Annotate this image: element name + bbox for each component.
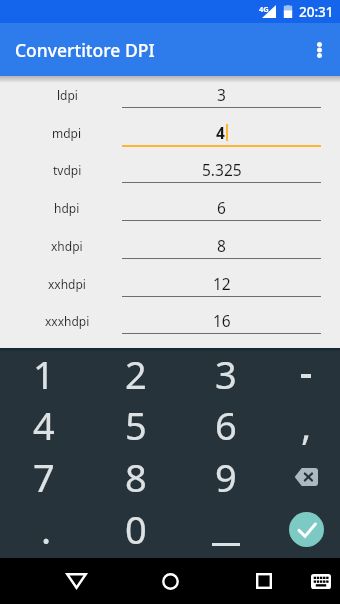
button[interactable]: 6: [122, 197, 321, 217]
button[interactable]: 8: [122, 235, 321, 255]
staticText: 4: [33, 399, 55, 451]
button[interactable]: 8: [91, 451, 181, 503]
staticText: ldpi: [57, 87, 78, 103]
staticText: 4G: [259, 4, 269, 14]
button[interactable]: Minus: [272, 348, 340, 400]
staticText: 1: [33, 348, 55, 400]
staticText: 3: [217, 84, 226, 104]
staticText: 5.325: [202, 159, 242, 179]
other: Backspace: [294, 468, 318, 486]
staticText: 20:31: [299, 3, 334, 21]
staticText: 6: [215, 399, 237, 451]
staticText: 12: [213, 273, 231, 293]
button[interactable]: More options: [297, 23, 340, 76]
staticText: xxhdpi: [48, 276, 86, 292]
staticText: 7: [33, 451, 55, 503]
button[interactable]: 6: [184, 399, 268, 451]
staticText: 5: [125, 399, 147, 451]
staticText: 8: [125, 451, 147, 503]
button[interactable]: Switch keyboard: [297, 558, 340, 604]
staticText: 2: [125, 348, 147, 400]
button[interactable]: Recent apps: [228, 558, 300, 604]
button[interactable]: 0: [91, 503, 181, 555]
staticText: 16: [213, 310, 231, 330]
button[interactable]: xxhdpi: [12, 274, 122, 294]
staticText: ,: [301, 399, 312, 451]
button[interactable]: 5.325: [122, 159, 321, 179]
button[interactable]: 3: [184, 348, 268, 400]
staticText: 9: [215, 451, 237, 503]
button[interactable]: 16: [122, 310, 321, 330]
staticText: xxxhdpi: [45, 313, 90, 329]
button[interactable]: mdpi: [12, 123, 122, 143]
button[interactable]: Space: [184, 503, 268, 555]
staticText: 3: [215, 348, 237, 400]
staticText: 0: [125, 503, 147, 555]
button[interactable]: 9: [184, 451, 268, 503]
button[interactable]: Back: [36, 558, 116, 604]
button[interactable]: Backspace: [272, 451, 340, 503]
staticText: mdpi: [52, 125, 82, 141]
button[interactable]: 2: [91, 348, 181, 400]
button[interactable]: xxxhdpi: [12, 311, 122, 331]
button[interactable]: xhdpi: [12, 236, 122, 256]
staticText: .: [41, 503, 52, 555]
button[interactable]: 12: [122, 273, 321, 293]
staticText: 4: [216, 122, 225, 142]
button[interactable]: 3: [122, 84, 321, 104]
button[interactable]: 1: [0, 348, 89, 400]
button[interactable]: Confirm: [272, 503, 340, 555]
other: Confirm: [289, 512, 324, 547]
button[interactable]: 7: [0, 451, 89, 503]
staticText: hdpi: [54, 200, 80, 216]
button[interactable]: 4: [0, 399, 89, 451]
button[interactable]: .: [0, 503, 89, 555]
staticText: 8: [217, 235, 226, 255]
button[interactable]: 4: [122, 122, 321, 142]
button[interactable]: Home: [130, 558, 210, 604]
staticText: xhdpi: [51, 238, 83, 254]
button[interactable]: hdpi: [12, 198, 122, 218]
button[interactable]: ldpi: [12, 85, 122, 105]
staticText: 6: [217, 197, 226, 217]
button[interactable]: tvdpi: [12, 160, 122, 180]
staticText: tvdpi: [53, 162, 82, 178]
button[interactable]: ,: [272, 399, 340, 451]
button[interactable]: 5: [91, 399, 181, 451]
staticText: Convertitore DPI: [15, 38, 155, 62]
